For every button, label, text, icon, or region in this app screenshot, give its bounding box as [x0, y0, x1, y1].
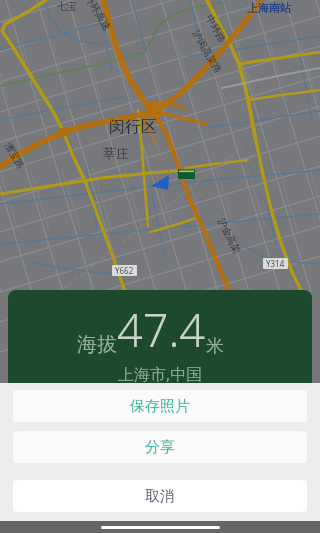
button[interactable]: 取消 [13, 480, 307, 512]
staticText: 上海南站 [247, 1, 291, 15]
staticText: Y314 [266, 258, 285, 269]
staticText: 莘庄 [103, 145, 129, 161]
staticText: 米 [206, 335, 224, 358]
staticText: 漕宝路 [2, 140, 27, 171]
staticText: 海拔 [77, 332, 117, 357]
staticText: 保存照片 [130, 397, 190, 416]
staticText: 外环高速 [82, 0, 114, 33]
button[interactable]: 分享 [13, 431, 307, 463]
staticText: 沪金高架 [215, 216, 243, 256]
staticText: 沪闵高架路 [190, 28, 224, 76]
staticText: 七宝 [57, 0, 77, 13]
staticText: 上海市,中国 [118, 363, 203, 383]
staticText: 闵行区 [109, 117, 157, 137]
staticText: 取消 [145, 487, 175, 506]
staticText: 47.4 [117, 299, 206, 360]
staticText: 分享 [145, 438, 175, 457]
button[interactable]: 保存照片 [13, 390, 307, 422]
staticText: 中环路 [203, 12, 229, 45]
staticText: Y662 [115, 265, 134, 276]
